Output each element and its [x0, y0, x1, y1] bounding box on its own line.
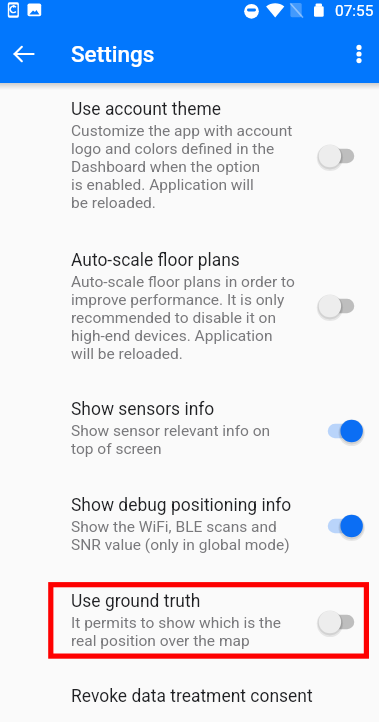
staticText: Use account theme	[71, 99, 221, 119]
button[interactable]: On	[317, 411, 365, 451]
staticText: Customize the app with account logo and …	[71, 122, 293, 212]
button[interactable]: Show sensors info	[0, 399, 379, 458]
staticText: It permits to show which is the real pos…	[71, 614, 281, 650]
button[interactable]: Off	[317, 602, 365, 642]
button[interactable]: Off	[317, 286, 365, 326]
staticText: Revoke data treatment consent	[71, 686, 313, 706]
button[interactable]: Off	[317, 136, 365, 176]
staticText: Auto-scale floor plans in order to impro…	[71, 273, 295, 363]
button[interactable]: More options	[339, 34, 379, 74]
button[interactable]: Navigate up	[4, 34, 44, 74]
staticText: Show sensor relevant info on top of scre…	[71, 422, 271, 458]
button[interactable]: Use account theme	[0, 99, 379, 212]
button[interactable]: Show debug positioning info	[0, 495, 379, 554]
staticText: Settings	[71, 41, 155, 67]
staticText: Show the WiFi, BLE scans and SNR value (…	[71, 518, 290, 554]
staticText: Auto-scale floor plans	[71, 250, 240, 270]
staticText: Show sensors info	[71, 399, 215, 419]
staticText: 07:55	[335, 2, 374, 20]
button[interactable]: Revoke data treatment consent	[0, 686, 379, 706]
button[interactable]: Auto-scale floor plans	[0, 250, 379, 363]
staticText: Use ground truth	[71, 591, 201, 611]
button[interactable]: Use ground truth	[0, 591, 379, 650]
button[interactable]: On	[317, 506, 365, 546]
staticText: Show debug positioning info	[71, 495, 292, 515]
